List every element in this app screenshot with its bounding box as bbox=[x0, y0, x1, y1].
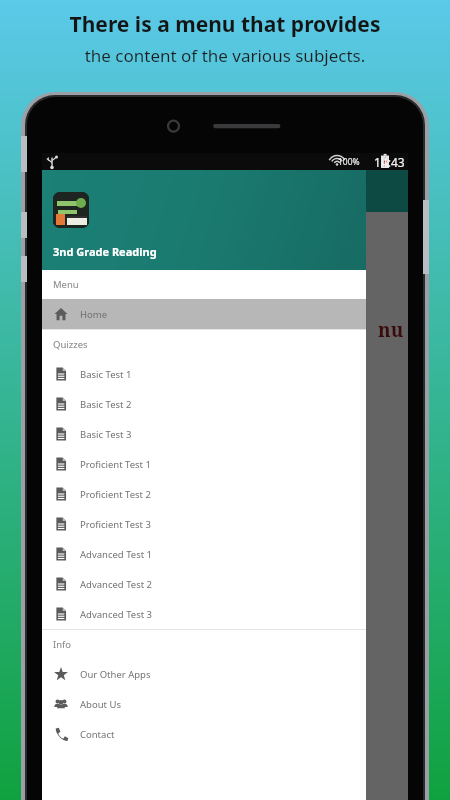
staticText: nu bbox=[378, 317, 404, 343]
staticText: Menu bbox=[53, 278, 79, 291]
button[interactable]: Contact bbox=[42, 719, 366, 749]
button[interactable]: Proficient Test 1 bbox=[42, 449, 366, 479]
staticText: 3nd Grade Reading bbox=[53, 244, 157, 259]
staticText: Basic Test 1 bbox=[80, 368, 132, 381]
staticText: Advanced Test 1 bbox=[80, 548, 153, 561]
staticText: Contact bbox=[80, 728, 115, 741]
staticText: Advanced Test 2 bbox=[80, 578, 153, 591]
button[interactable]: Our Other Apps bbox=[42, 659, 366, 689]
staticText: About Us bbox=[80, 698, 121, 711]
staticText: Home bbox=[80, 308, 108, 321]
staticText: Basic Test 3 bbox=[80, 428, 132, 441]
button[interactable]: About Us bbox=[42, 689, 366, 719]
staticText: Our Other Apps bbox=[80, 668, 151, 681]
staticText: 14:43 bbox=[374, 154, 405, 170]
staticText: Proficient Test 1 bbox=[80, 458, 151, 471]
staticText: Basic Test 2 bbox=[80, 398, 132, 411]
button[interactable]: Home bbox=[42, 299, 366, 329]
button[interactable]: Proficient Test 3 bbox=[42, 509, 366, 539]
button[interactable]: Proficient Test 2 bbox=[42, 479, 366, 509]
button[interactable]: Advanced Test 3 bbox=[42, 599, 366, 629]
staticText: Proficient Test 2 bbox=[80, 488, 151, 501]
staticText: 100% bbox=[338, 156, 360, 168]
staticText: Quizzes bbox=[53, 338, 88, 351]
button[interactable]: Basic Test 1 bbox=[42, 359, 366, 389]
button[interactable]: Advanced Test 1 bbox=[42, 539, 366, 569]
staticText: There is a menu that provides bbox=[0, 10, 450, 39]
button[interactable]: Basic Test 3 bbox=[42, 419, 366, 449]
button[interactable]: Basic Test 2 bbox=[42, 389, 366, 419]
staticText: Advanced Test 3 bbox=[80, 608, 153, 621]
staticText: Info bbox=[53, 638, 72, 651]
button[interactable]: Advanced Test 2 bbox=[42, 569, 366, 599]
staticText: Proficient Test 3 bbox=[80, 518, 151, 531]
button[interactable]: 3nd Grade Reading bbox=[42, 170, 366, 270]
staticText: the content of the various subjects. bbox=[0, 44, 450, 67]
